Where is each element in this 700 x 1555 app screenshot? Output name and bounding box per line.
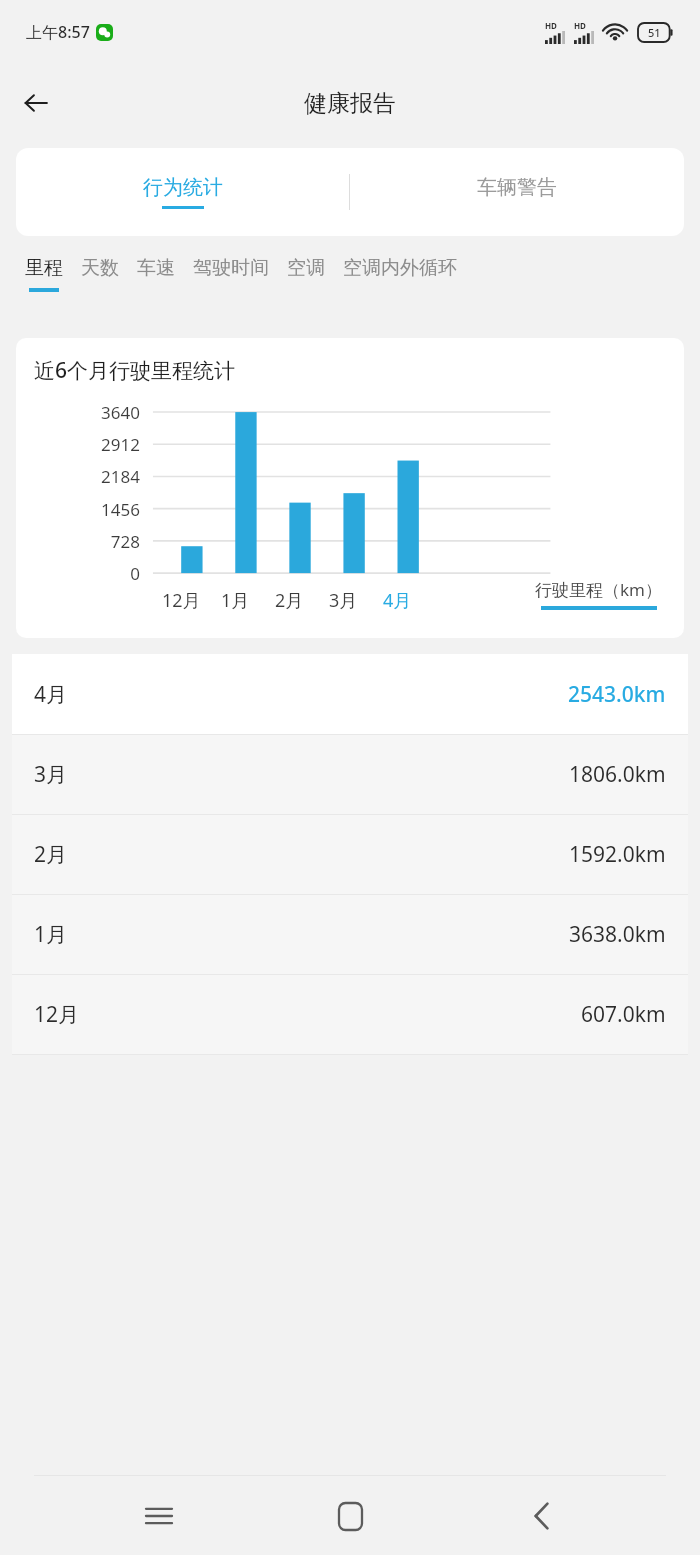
staticText: 12月 [34,1000,80,1029]
staticText: 2184 [16,465,140,488]
staticText: 1月 [34,920,68,949]
staticText: 行驶里程（km） [535,578,662,601]
button[interactable]: 12月 [12,974,688,1054]
button[interactable]: 主页 [318,1484,382,1548]
button[interactable]: 天数 [72,254,128,290]
button[interactable]: 空调 [278,254,334,290]
staticText: HD [574,20,586,31]
staticText: 12月 [162,588,201,613]
staticText: 3638.0km [569,920,666,949]
staticText: 上午8:57 [26,21,90,43]
staticText: 行为统计 [143,175,223,200]
button[interactable]: 2月 [12,814,688,894]
button[interactable]: 返回 [8,75,64,131]
staticText: 4月 [383,588,412,613]
staticText: 空调 [287,256,325,280]
button[interactable]: 空调内外循环 [334,254,466,290]
staticText: 51 [648,25,661,40]
button[interactable]: 行为统计 [16,148,349,236]
staticText: 健康报告 [304,89,396,118]
button[interactable]: 驾驶时间 [184,254,278,290]
staticText: 驾驶时间 [193,256,269,280]
staticText: 3640 [16,401,140,424]
staticText: 728 [16,530,140,553]
staticText: 近6个月行驶里程统计 [34,356,236,385]
staticText: 2月 [34,840,68,869]
staticText: 空调内外循环 [343,256,457,280]
button[interactable]: 4月 [12,654,688,734]
button[interactable]: 车速 [128,254,184,290]
staticText: 4月 [34,680,68,709]
staticText: 0 [16,562,140,585]
staticText: 3月 [329,588,358,613]
button[interactable]: 车辆警告 [350,148,684,236]
button[interactable]: 最近任务 [127,1484,191,1548]
button[interactable]: 返回 [509,1484,573,1548]
staticText: 2912 [16,433,140,456]
staticText: 607.0km [581,1000,666,1029]
staticText: 车辆警告 [477,175,557,200]
staticText: 天数 [81,256,119,280]
staticText: 1月 [221,588,250,613]
staticText: 3月 [34,760,68,789]
staticText: 2543.0km [568,680,666,709]
staticText: 2月 [275,588,304,613]
staticText: 里程 [25,256,63,280]
staticText: 车速 [137,256,175,280]
button[interactable]: 1月 [12,894,688,974]
staticText: 1592.0km [569,840,666,869]
button[interactable]: 3月 [12,734,688,814]
staticText: 1456 [16,498,140,521]
staticText: 1806.0km [569,760,666,789]
button[interactable]: 里程 [16,254,72,294]
staticText: HD [545,20,557,31]
